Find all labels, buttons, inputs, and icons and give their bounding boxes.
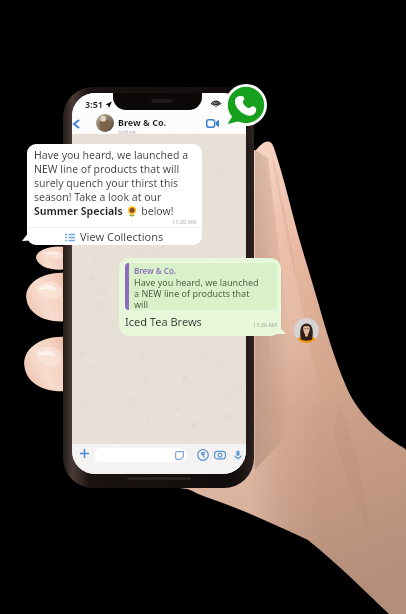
staticText: View Collections <box>80 229 164 244</box>
button[interactable]: Message <box>94 448 187 462</box>
button[interactable]: WhatsApp <box>221 80 271 130</box>
button[interactable]: Camera <box>214 449 226 461</box>
button[interactable]: Payment <box>197 449 209 461</box>
staticText: 11:20 AM <box>253 321 277 328</box>
button[interactable]: Profile photo <box>294 318 319 343</box>
staticText: Brew & Co. <box>134 265 177 276</box>
button[interactable]: Back <box>72 115 83 132</box>
button[interactable]: View Collections <box>27 228 202 245</box>
staticText: 11:20 AM <box>172 218 196 225</box>
staticText: Brew & Co. <box>118 116 167 128</box>
staticText: Iced Tea Brews <box>125 314 202 329</box>
button[interactable]: Video call <box>203 115 221 131</box>
button[interactable]: Attach <box>77 446 91 460</box>
button[interactable]: Contact photo <box>96 114 114 132</box>
staticText: 3:51 <box>85 98 103 110</box>
staticText: Have you heard, we launched a NEW line o… <box>134 276 261 310</box>
staticText: Have you heard, we launched a NEW line o… <box>34 148 196 218</box>
button[interactable]: Voice message <box>233 449 243 461</box>
staticText: online <box>118 128 136 136</box>
